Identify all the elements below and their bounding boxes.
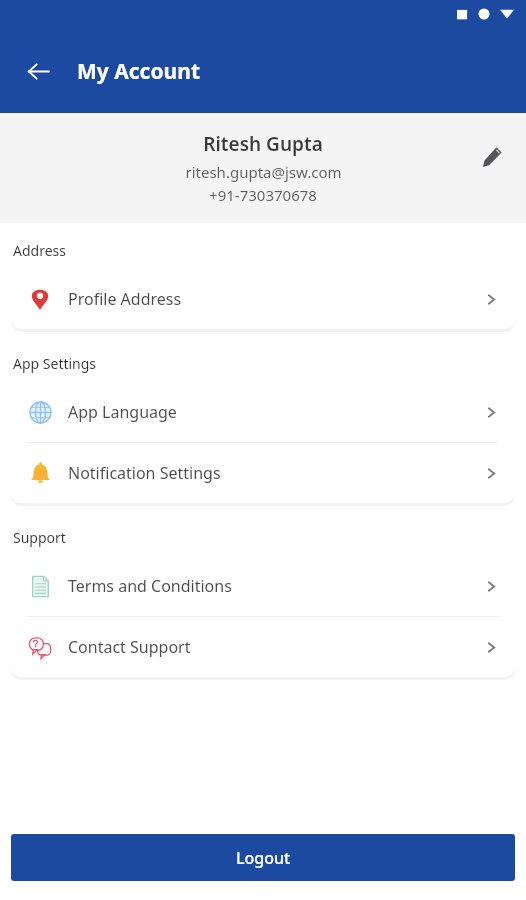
button[interactable]: Back: [16, 49, 60, 93]
button[interactable]: App Language: [11, 382, 515, 442]
staticText: My Account: [77, 57, 200, 86]
button[interactable]: Terms and Conditions: [11, 556, 515, 616]
button[interactable]: Terms and Conditions: [11, 559, 515, 619]
staticText: Terms and Conditions: [68, 575, 484, 597]
staticText: Notification Settings: [68, 462, 484, 484]
staticText: App Settings: [13, 354, 97, 373]
staticText: Support: [13, 528, 66, 547]
staticText: Profile Address: [68, 288, 484, 310]
staticText: +91-730370678: [209, 185, 317, 205]
button[interactable]: Contact Support: [11, 617, 515, 677]
button[interactable]: Profile Address: [11, 272, 515, 332]
staticText: App Language: [68, 404, 484, 426]
button[interactable]: Notification Settings: [11, 443, 515, 503]
staticText: Logout: [236, 847, 291, 869]
button[interactable]: Contact Support: [11, 620, 515, 680]
button[interactable]: Notification Settings: [11, 446, 515, 506]
staticText: Contact Support: [68, 636, 484, 658]
button[interactable]: App Language: [11, 385, 515, 445]
staticText: App Language: [68, 401, 484, 423]
staticText: ritesh.gupta@jsw.com: [185, 162, 342, 182]
button[interactable]: Profile Address: [11, 269, 515, 329]
staticText: Address: [13, 241, 66, 260]
button[interactable]: Logout: [11, 834, 515, 881]
staticText: Notification Settings: [68, 465, 484, 487]
staticText: Profile Address: [68, 291, 484, 313]
button[interactable]: Edit profile: [470, 135, 514, 179]
staticText: Terms and Conditions: [68, 578, 484, 600]
staticText: Contact Support: [68, 639, 484, 661]
staticText: Ritesh Gupta: [203, 131, 323, 157]
